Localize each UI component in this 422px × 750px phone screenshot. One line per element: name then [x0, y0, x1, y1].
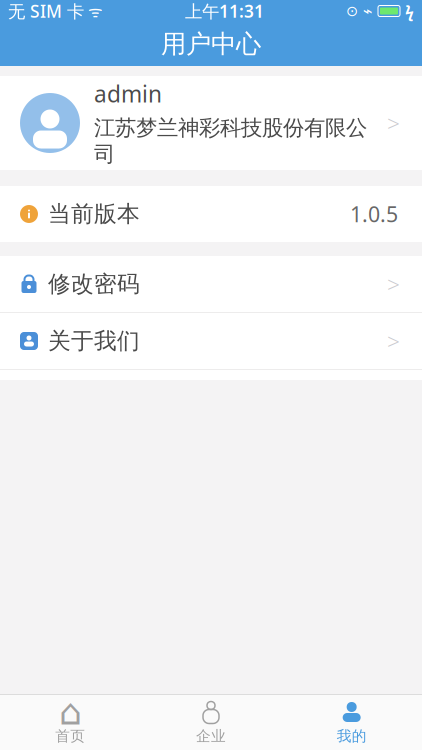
button[interactable]: 我的 [281, 696, 422, 748]
staticText: > [387, 326, 400, 356]
staticText: ⌂ [59, 692, 82, 732]
staticText: 关于我们 [48, 327, 140, 355]
staticText: ϟ [405, 0, 414, 22]
staticText: ⊙ [346, 3, 358, 19]
staticText: 首页 [55, 727, 85, 745]
staticText: ᯤ [84, 0, 103, 22]
button[interactable]: ↗ [0, 370, 422, 426]
staticText: 江苏梦兰神彩科技股份有限公司 [94, 115, 367, 167]
staticText: 企业 [196, 727, 226, 745]
staticText: 修改密码 [48, 270, 140, 298]
staticText: > [387, 269, 400, 299]
button[interactable]: 修改密码 [0, 256, 422, 312]
button[interactable]: 关于我们 [0, 313, 422, 369]
staticText: 我的 [337, 727, 367, 745]
button[interactable]: 当前版本 [0, 186, 422, 242]
button[interactable]: ⌂ [0, 696, 141, 748]
staticText: 无 SIM 卡 [8, 0, 84, 22]
staticText: ⌁ [363, 2, 373, 20]
button[interactable]: admin [0, 76, 422, 170]
staticText: > [387, 108, 400, 138]
staticText: 上午11:31 [185, 0, 264, 22]
staticText: admin [94, 79, 162, 109]
staticText: 1.0.5 [350, 200, 398, 228]
staticText: 当前版本 [48, 200, 140, 228]
staticText: 用户中心 [161, 28, 261, 59]
button[interactable]: 企业 [141, 696, 281, 748]
